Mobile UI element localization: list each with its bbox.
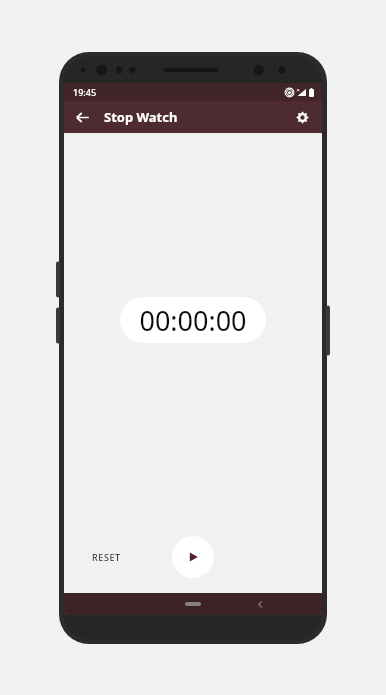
- button[interactable]: RESET: [86, 545, 127, 569]
- button[interactable]: Back: [250, 594, 270, 614]
- staticText: 00:00:00: [139, 302, 247, 339]
- staticText: 19:45: [73, 86, 97, 98]
- button[interactable]: Start: [172, 536, 214, 578]
- staticText: RESET: [92, 551, 121, 563]
- button[interactable]: Home: [180, 594, 206, 614]
- button[interactable]: Back: [68, 103, 96, 131]
- button[interactable]: Settings: [288, 103, 316, 131]
- staticText: Stop Watch: [104, 108, 178, 126]
